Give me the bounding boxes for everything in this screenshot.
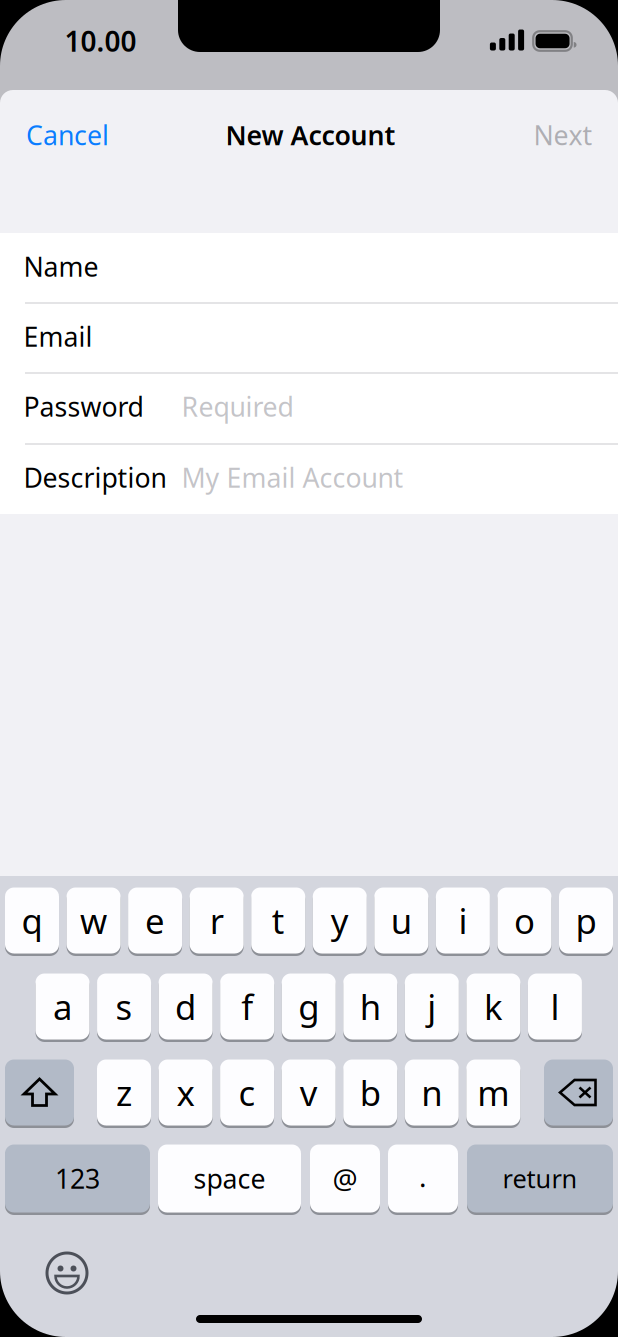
staticText: i (458, 897, 467, 943)
staticText: m (477, 1069, 509, 1115)
button[interactable]: l (528, 972, 582, 1041)
button[interactable]: u (374, 886, 428, 955)
button[interactable]: n (405, 1058, 459, 1127)
staticText: y (331, 897, 349, 943)
button[interactable]: @ (310, 1143, 380, 1214)
button[interactable]: z (97, 1058, 151, 1127)
staticText: 10.00 (64, 22, 136, 60)
button[interactable]: Email (0, 303, 618, 373)
button[interactable]: r (190, 886, 244, 955)
staticText: Password (23, 389, 143, 424)
button[interactable]: a (35, 972, 89, 1041)
button[interactable]: o (497, 886, 551, 955)
staticText: Cancel (26, 117, 109, 153)
button[interactable]: x (159, 1058, 213, 1127)
staticText: z (116, 1069, 132, 1115)
staticText: @ (332, 1160, 357, 1197)
button[interactable]: t (251, 886, 305, 955)
staticText: return (502, 1162, 577, 1195)
button[interactable]: c (220, 1058, 274, 1127)
button[interactable]: f (220, 972, 274, 1041)
staticText: f (241, 983, 253, 1029)
staticText: j (427, 983, 436, 1029)
staticText: o (514, 897, 535, 943)
staticText: a (53, 983, 72, 1029)
button[interactable]: h (343, 972, 397, 1041)
staticText: p (575, 897, 596, 943)
staticText: h (360, 983, 381, 1029)
staticText: g (298, 983, 319, 1029)
button[interactable]: q (5, 886, 59, 955)
button[interactable]: Description (0, 444, 618, 514)
staticText: b (360, 1069, 381, 1115)
button[interactable]: b (343, 1058, 397, 1127)
staticText: Required (181, 389, 293, 424)
staticText: t (272, 897, 285, 943)
staticText: k (484, 983, 503, 1029)
button[interactable]: e (128, 886, 182, 955)
staticText: Name (23, 249, 98, 284)
button[interactable]: space (158, 1143, 301, 1214)
staticText: w (80, 897, 107, 943)
staticText: New Account (225, 117, 395, 153)
staticText: Next (533, 117, 592, 153)
button[interactable]: . (388, 1143, 458, 1214)
button[interactable]: return (467, 1143, 613, 1214)
button[interactable]: Cancel (14, 103, 121, 167)
button[interactable]: p (559, 886, 613, 955)
button[interactable]: Name (0, 233, 618, 303)
button[interactable]: w (67, 886, 121, 955)
staticText: Email (23, 319, 92, 354)
staticText: 123 (55, 1161, 100, 1196)
button[interactable]: Delete (544, 1058, 613, 1127)
staticText: d (175, 983, 196, 1029)
staticText: . (419, 1158, 427, 1195)
button[interactable]: v (282, 1058, 336, 1127)
button[interactable]: m (466, 1058, 520, 1127)
button[interactable]: 123 (5, 1143, 150, 1214)
staticText: x (177, 1069, 195, 1115)
staticText: s (116, 983, 133, 1029)
staticText: q (21, 897, 42, 943)
staticText: Description (23, 460, 166, 495)
staticText: e (145, 897, 165, 943)
staticText: space (193, 1161, 265, 1196)
button[interactable]: d (159, 972, 213, 1041)
button[interactable]: s (97, 972, 151, 1041)
button[interactable]: k (466, 972, 520, 1041)
button[interactable]: j (405, 972, 459, 1041)
button[interactable]: Next (521, 103, 604, 167)
button[interactable]: i (436, 886, 490, 955)
staticText: c (239, 1069, 256, 1115)
staticText: l (550, 983, 559, 1029)
button[interactable]: g (282, 972, 336, 1041)
button[interactable]: Password (0, 373, 618, 443)
button[interactable]: Emoji keyboard (36, 1242, 98, 1304)
staticText: r (210, 897, 224, 943)
staticText: n (421, 1069, 442, 1115)
button[interactable]: y (313, 886, 367, 955)
staticText: u (391, 897, 412, 943)
staticText: v (300, 1069, 318, 1115)
staticText: My Email Account (181, 460, 403, 495)
button[interactable]: Shift (5, 1058, 74, 1127)
